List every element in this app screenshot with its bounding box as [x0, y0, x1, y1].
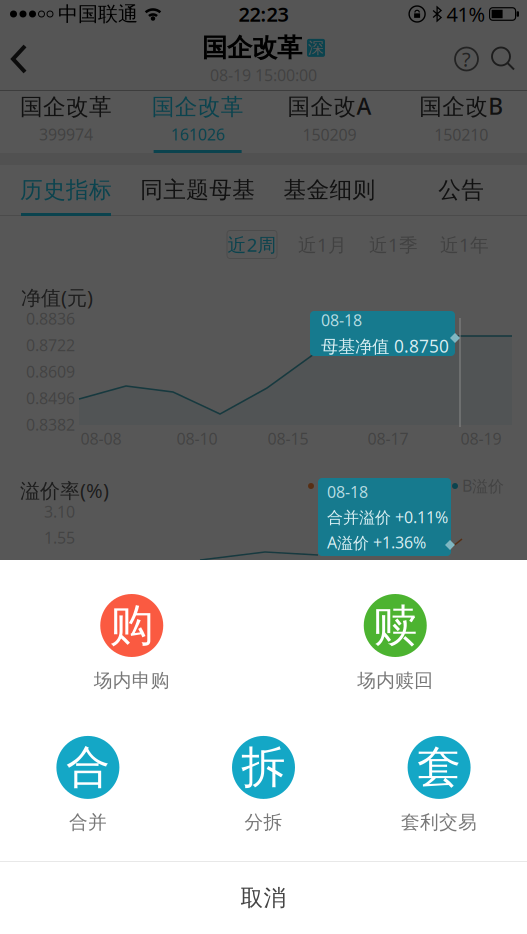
- staticText: 场内赎回: [357, 669, 433, 692]
- staticText: 08-08: [80, 428, 121, 449]
- staticText: 近1季: [369, 232, 418, 257]
- staticText: 溢价率(%): [20, 477, 109, 504]
- staticText: ?: [462, 46, 471, 72]
- staticText: 0.8496: [26, 387, 75, 409]
- staticText: 150209: [302, 124, 356, 145]
- staticText: 22:23: [238, 1, 288, 27]
- staticText: 场内申购: [94, 669, 170, 692]
- staticText: 0.8609: [26, 361, 75, 382]
- staticText: 中国联通: [58, 2, 138, 26]
- staticText: 公告: [438, 176, 484, 204]
- staticText: 0.8382: [26, 414, 75, 435]
- button[interactable]: 近2周: [227, 230, 277, 258]
- staticText: 基金细则: [283, 176, 375, 204]
- button[interactable]: 购: [0, 594, 263, 692]
- button[interactable]: 近1月: [277, 232, 347, 257]
- staticText: 国企改B: [419, 91, 503, 121]
- button[interactable]: 同主题母基: [132, 165, 264, 215]
- staticText: A溢价 +1.36%: [327, 532, 426, 553]
- staticText: 合并: [69, 811, 107, 834]
- staticText: 国企改革: [152, 93, 244, 121]
- staticText: 08-18: [321, 309, 362, 331]
- staticText: 150210: [434, 124, 488, 145]
- button[interactable]: 拆: [176, 736, 351, 834]
- staticText: 近1月: [298, 232, 347, 257]
- staticText: 取消: [240, 884, 286, 912]
- staticText: 同主题母基: [140, 176, 255, 204]
- button[interactable]: 国企改革: [0, 91, 132, 153]
- button[interactable]: Help: [449, 40, 484, 78]
- staticText: 1.55: [44, 527, 75, 548]
- button[interactable]: 合: [0, 736, 176, 834]
- button[interactable]: 基金细则: [263, 165, 395, 215]
- staticText: 净值(元): [21, 284, 93, 311]
- staticText: 08-15: [267, 428, 308, 449]
- staticText: 08-19: [460, 428, 501, 449]
- staticText: 合: [66, 740, 110, 794]
- staticText: 母基净值 0.8750: [321, 335, 449, 358]
- staticText: 08-18: [327, 481, 368, 502]
- staticText: 41%: [447, 1, 486, 27]
- staticText: 拆: [241, 740, 285, 794]
- staticText: 0.8722: [26, 334, 75, 356]
- button[interactable]: 公告: [395, 165, 527, 215]
- button[interactable]: 取消: [0, 862, 527, 934]
- staticText: 套利交易: [401, 811, 477, 834]
- staticText: 合并溢价 +0.11%: [327, 506, 448, 527]
- staticText: B溢价: [462, 475, 504, 496]
- button[interactable]: 赎: [263, 594, 527, 692]
- button[interactable]: 近1季: [347, 232, 418, 257]
- staticText: 深: [308, 38, 324, 58]
- staticText: 399974: [39, 124, 93, 145]
- button[interactable]: 套: [351, 736, 527, 834]
- button[interactable]: Search: [484, 41, 527, 76]
- staticText: 历史指标: [20, 176, 112, 204]
- staticText: 近1年: [440, 232, 489, 257]
- staticText: 08-19 15:00:00: [210, 64, 317, 86]
- button[interactable]: 国企改A: [263, 91, 395, 153]
- button[interactable]: 历史指标: [0, 165, 132, 215]
- staticText: 赎: [373, 598, 417, 652]
- staticText: 08-17: [367, 428, 408, 449]
- staticText: 国企改A: [287, 91, 371, 121]
- staticText: 161026: [171, 124, 225, 145]
- staticText: 套: [417, 740, 461, 794]
- staticText: 0.8836: [26, 308, 75, 329]
- button[interactable]: 近1年: [418, 232, 489, 257]
- button[interactable]: 国企改B: [395, 91, 527, 153]
- button[interactable]: Back: [0, 30, 34, 88]
- staticText: 3.10: [44, 501, 75, 522]
- button[interactable]: 国企改革: [132, 91, 264, 153]
- staticText: 08-10: [176, 428, 217, 449]
- staticText: 购: [110, 598, 154, 652]
- staticText: 国企改革: [20, 93, 112, 121]
- staticText: 分拆: [244, 811, 282, 834]
- staticText: 国企改革: [202, 32, 302, 63]
- staticText: 近2周: [227, 232, 276, 257]
